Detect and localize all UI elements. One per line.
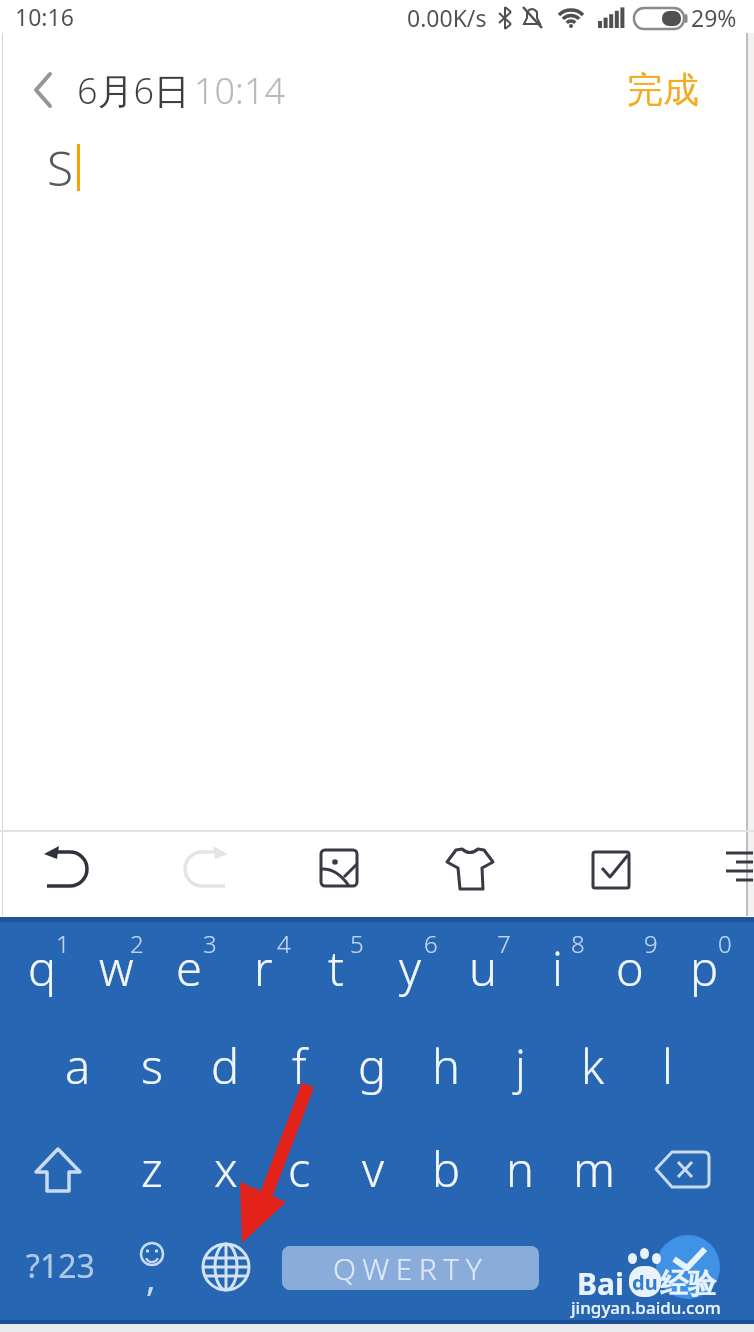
button[interactable]: j [410,1011,630,1121]
staticText: v [362,1137,385,1201]
staticText: e [176,936,202,1000]
button[interactable]: m [484,1114,704,1224]
button[interactable]: f [189,1011,409,1121]
staticText: 经验 [660,1266,716,1301]
staticText: 0.00K/s [407,2,487,33]
button[interactable]: l [557,1011,754,1121]
button[interactable] [315,845,361,891]
staticText: 7 [497,927,511,960]
staticText: n [506,1137,534,1201]
staticText: u [469,936,497,1000]
staticText: 2 [130,927,144,960]
button[interactable] [40,845,96,893]
staticText: Bai [577,1263,624,1304]
staticText: o [616,936,644,1000]
staticText: m [573,1137,615,1201]
staticText: z [141,1137,163,1201]
button[interactable]: t [226,913,446,1023]
button[interactable] [20,62,70,118]
staticText: 8 [571,927,585,960]
staticText: 完成 [627,67,699,112]
button[interactable] [588,845,636,891]
button[interactable]: i [447,913,667,1023]
staticText: 3 [203,927,217,960]
staticText: l [662,1034,673,1098]
button[interactable]: s [42,1011,262,1121]
staticText: f [292,1034,307,1098]
button[interactable]: q [0,913,152,1023]
staticText: c [288,1137,311,1201]
staticText: w [99,936,134,1000]
staticText: r [254,936,273,1000]
button[interactable] [652,1143,716,1195]
button[interactable]: r [153,913,373,1023]
button[interactable]: w [6,913,226,1023]
staticText: g [358,1034,387,1098]
button[interactable] [28,1141,88,1199]
button[interactable]: a [0,1011,188,1121]
staticText: 1 [56,927,70,960]
button[interactable]: 完成 [553,34,754,144]
staticText: 6 [424,927,438,960]
staticText: 4 [277,927,291,960]
button[interactable]: g [262,1011,482,1121]
staticText: du [632,1269,658,1296]
staticText: 29% [691,2,737,33]
button[interactable] [199,1240,253,1294]
button[interactable]: x [116,1114,336,1224]
button[interactable] [122,1232,182,1308]
staticText: 0 [718,927,732,960]
staticText: a [65,1034,91,1098]
staticText: jingyan.baidu.com [571,1296,721,1319]
button[interactable]: u [373,913,593,1023]
staticText: 10:16 [15,1,74,32]
button[interactable] [176,845,232,893]
button[interactable]: b [336,1114,556,1224]
button[interactable]: v [263,1114,483,1224]
button[interactable]: ?123 [0,1211,170,1321]
staticText: S [47,135,74,200]
staticText: 6月6日 [77,66,191,115]
staticText: i [552,936,563,1000]
staticText: b [432,1137,461,1201]
staticText: 5 [350,927,364,960]
staticText: q [28,936,57,1000]
button[interactable] [443,843,499,895]
staticText: , [146,1253,156,1302]
button[interactable]: z [42,1114,262,1224]
staticText: h [432,1034,460,1098]
staticText: x [214,1137,238,1201]
staticText: 10:14 [194,66,286,115]
staticText: s [141,1034,163,1098]
button[interactable]: n [410,1114,630,1224]
button[interactable]: QWERTY [282,1246,539,1290]
staticText: p [690,936,719,1000]
staticText: y [399,936,422,1000]
button[interactable]: y [300,913,520,1023]
staticText: QWERTY [333,1248,489,1289]
button[interactable]: h [336,1011,556,1121]
button[interactable]: p [594,913,754,1023]
staticText: d [211,1034,240,1098]
button[interactable]: k [483,1011,703,1121]
staticText: ?123 [26,1244,95,1288]
staticText: j [515,1034,526,1098]
button[interactable]: e [79,913,299,1023]
button[interactable]: c [189,1114,409,1224]
staticText: k [581,1034,605,1098]
staticText: 9 [644,927,658,960]
button[interactable]: d [115,1011,335,1121]
button[interactable]: o [520,913,740,1023]
staticText: t [328,936,344,1000]
